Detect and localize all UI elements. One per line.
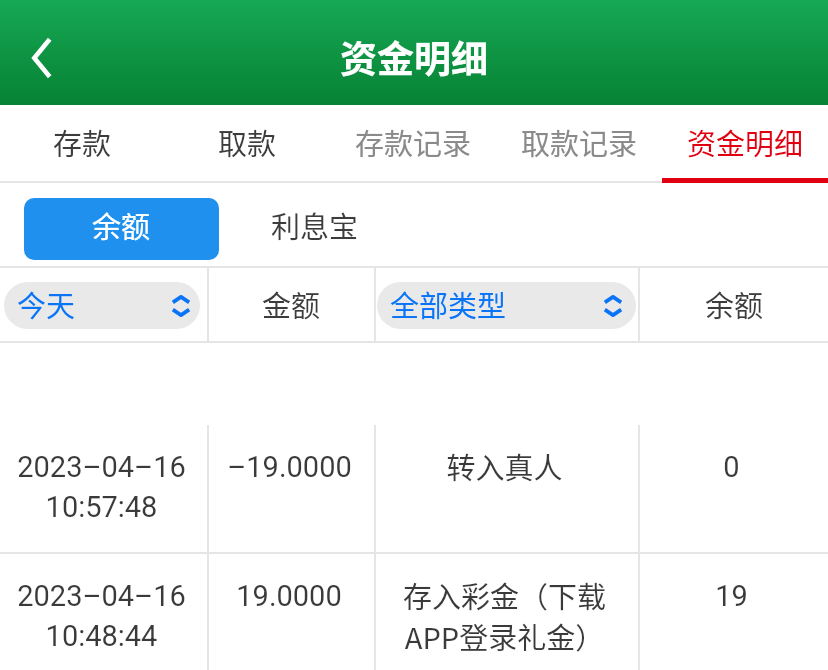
staticText: 取款 <box>218 121 277 163</box>
button[interactable]: 存款 <box>0 105 165 183</box>
staticText: 19 <box>715 579 748 613</box>
staticText: 资金明细 <box>687 121 804 163</box>
button[interactable]: 2023–04–16 10:57:48 <box>0 425 828 554</box>
button[interactable]: 利息宝 <box>245 198 385 260</box>
button[interactable]: Back <box>0 11 84 105</box>
staticText: 存入彩金（下载APP登录礼金） <box>402 574 607 657</box>
staticText: 余额 <box>92 204 151 246</box>
button[interactable]: 全部类型 <box>377 282 636 329</box>
button[interactable]: 今天 <box>4 282 200 329</box>
other: Change 全部类型 <box>603 295 623 317</box>
staticText: 取款记录 <box>521 121 638 163</box>
staticText: 2023–04–16 10:57:48 <box>17 450 186 525</box>
staticText: 存款记录 <box>355 121 472 163</box>
button[interactable]: 取款 <box>165 105 330 183</box>
staticText: –19.0000 <box>227 450 352 484</box>
staticText: 转入真人 <box>446 445 563 487</box>
button[interactable]: 取款记录 <box>496 105 662 183</box>
staticText: 余额 <box>705 283 764 325</box>
staticText: 资金明细 <box>340 30 488 84</box>
staticText: 利息宝 <box>271 204 359 246</box>
button[interactable]: 资金明细 <box>662 105 828 183</box>
staticText: 0 <box>723 450 740 484</box>
staticText: 存款 <box>53 121 112 163</box>
staticText: 19.0000 <box>236 579 342 613</box>
staticText: 2023–04–16 10:48:44 <box>17 579 186 654</box>
staticText: 全部类型 <box>390 283 507 325</box>
button[interactable]: 存款记录 <box>330 105 496 183</box>
staticText: 金额 <box>262 283 321 325</box>
button[interactable]: 2023–04–16 10:48:44 <box>0 554 828 670</box>
button[interactable]: 余额 <box>24 198 219 260</box>
staticText: 今天 <box>17 283 76 325</box>
other: Change 今天 <box>171 295 191 317</box>
